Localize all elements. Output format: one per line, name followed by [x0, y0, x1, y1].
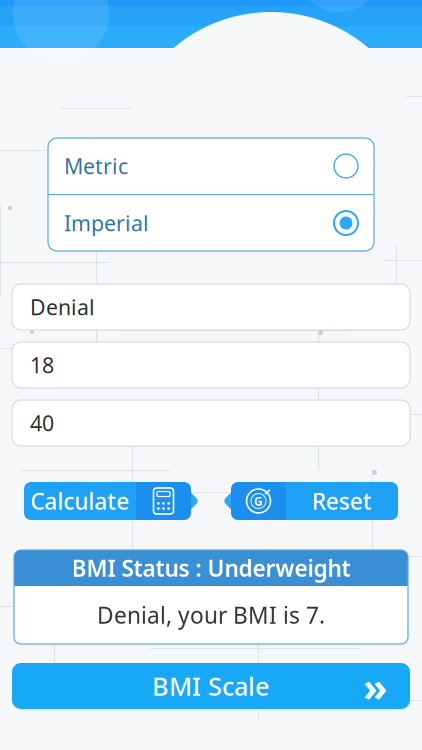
staticText: BMI Status : Underweight	[71, 553, 350, 583]
staticText: 18	[30, 351, 54, 379]
staticText: Imperial	[64, 209, 149, 237]
staticText: »	[363, 659, 388, 712]
button[interactable]: BMI Scale	[12, 663, 410, 709]
button[interactable]: Metric	[48, 138, 374, 194]
staticText: Reset	[312, 486, 372, 516]
staticText: Calculate	[30, 486, 129, 516]
staticText: Denial, your BMI is 7.	[97, 600, 325, 630]
button[interactable]: Calculate	[10, 481, 205, 521]
button[interactable]: 18	[12, 342, 410, 388]
button[interactable]: Imperial	[48, 195, 374, 251]
staticText: G	[254, 493, 263, 509]
staticText: Metric	[64, 152, 128, 180]
button[interactable]: Denial	[12, 284, 410, 330]
staticText: BMI Scale	[152, 669, 270, 703]
staticText: Denial	[30, 293, 95, 321]
staticText: 40	[30, 409, 54, 437]
button[interactable]: G	[217, 481, 412, 521]
button[interactable]: 40	[12, 400, 410, 446]
